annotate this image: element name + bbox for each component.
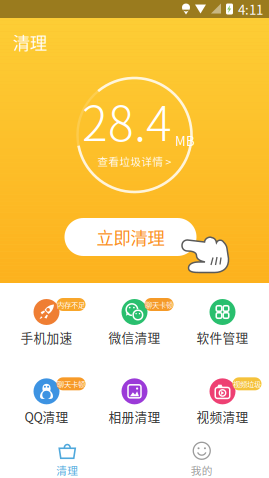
staticText: 清理 xyxy=(13,29,47,55)
button[interactable]: 内存不足 xyxy=(2,298,90,346)
button[interactable]: 我的 xyxy=(134,442,269,478)
staticText: 软件管理 xyxy=(196,328,248,346)
staticText: 相册清理 xyxy=(108,407,160,426)
staticText: 内存不足 xyxy=(57,299,85,310)
staticText: 清理 xyxy=(56,462,78,478)
staticText: 视频垃圾 xyxy=(233,378,261,389)
staticText: 立即清理 xyxy=(96,224,164,250)
staticText: 查看垃圾详情 > xyxy=(97,153,171,169)
staticText: 28.4 xyxy=(82,85,172,155)
staticText: 4:11 xyxy=(238,0,263,19)
staticText: 我的 xyxy=(191,462,213,478)
staticText: 微信清理 xyxy=(108,328,160,346)
staticText: 聊天卡顿 xyxy=(57,378,85,389)
button[interactable]: 聊天卡顿 xyxy=(90,298,178,346)
staticText: QQ清理 xyxy=(24,407,68,426)
button[interactable]: 视频垃圾 xyxy=(178,377,266,426)
staticText: 手机加速 xyxy=(20,328,72,346)
button[interactable]: 清理 xyxy=(0,442,134,478)
button[interactable]: 相册清理 xyxy=(90,377,178,426)
button[interactable]: 软件管理 xyxy=(178,298,266,346)
staticText: 聊天卡顿 xyxy=(145,299,173,310)
staticText: MB xyxy=(175,130,195,150)
button[interactable]: 聊天卡顿 xyxy=(2,377,90,426)
staticText: 视频清理 xyxy=(196,407,248,426)
button[interactable]: 立即清理 xyxy=(64,218,196,256)
